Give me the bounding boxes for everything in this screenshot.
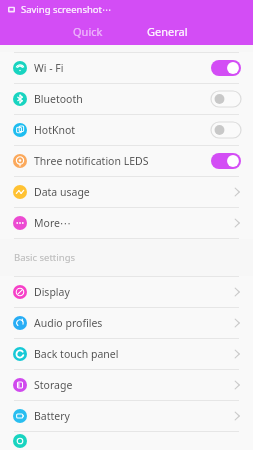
button[interactable]: Three notification LEDS: [0, 146, 253, 176]
staticText: Storage: [34, 378, 73, 392]
staticText: Audio profiles: [34, 316, 103, 330]
button[interactable]: Quick: [50, 18, 126, 45]
staticText: More⋯: [34, 216, 71, 230]
staticText: Bluetooth: [34, 92, 83, 106]
staticText: Data usage: [34, 185, 90, 199]
staticText: General: [147, 24, 188, 39]
staticText: Battery: [34, 409, 70, 423]
button[interactable]: Audio profiles: [0, 308, 253, 338]
staticText: Quick: [73, 24, 103, 39]
button[interactable]: Toggle on: [211, 153, 241, 169]
staticText: Wi - Fi: [34, 61, 64, 75]
button[interactable]: Data usage: [0, 177, 253, 207]
staticText: Basic settings: [14, 251, 76, 264]
button[interactable]: Display: [0, 277, 253, 307]
button[interactable]: [0, 432, 253, 450]
button[interactable]: Wi - Fi: [0, 53, 253, 83]
button[interactable]: Toggle off: [211, 122, 241, 138]
button[interactable]: Battery: [0, 401, 253, 431]
button[interactable]: Toggle on: [211, 60, 241, 76]
button[interactable]: HotKnot: [0, 115, 253, 145]
staticText: Display: [34, 285, 70, 299]
staticText: Three notification LEDS: [34, 154, 149, 168]
staticText: Saving screenshot⋯: [21, 3, 112, 16]
button[interactable]: More⋯: [0, 208, 253, 238]
staticText: Back touch panel: [34, 347, 119, 361]
button[interactable]: Bluetooth: [0, 84, 253, 114]
button[interactable]: Back touch panel: [0, 339, 253, 369]
button[interactable]: Storage: [0, 370, 253, 400]
button[interactable]: General: [126, 18, 208, 45]
staticText: HotKnot: [34, 123, 76, 137]
button[interactable]: Toggle off: [211, 91, 241, 107]
